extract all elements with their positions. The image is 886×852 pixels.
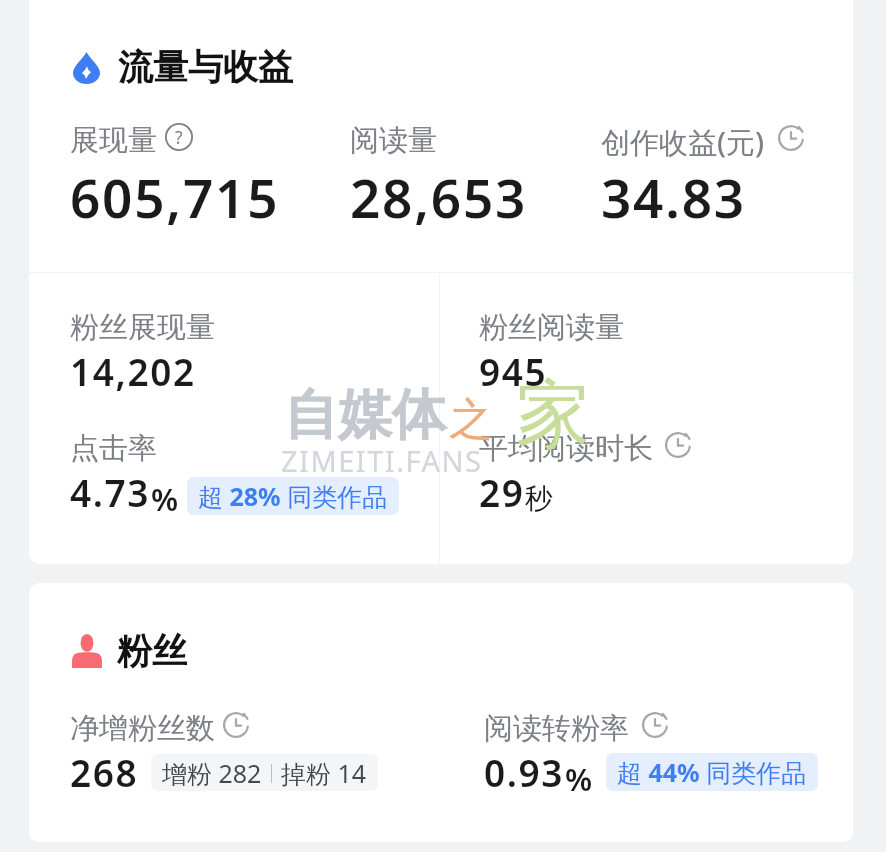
staticText: 945 bbox=[479, 346, 548, 396]
staticText: 粉丝展现量 bbox=[70, 309, 215, 346]
staticText: % bbox=[151, 478, 179, 520]
staticText: 29 bbox=[479, 467, 525, 517]
staticText: 掉粉 14 bbox=[281, 756, 367, 790]
staticText: 增粉 282 bbox=[162, 756, 262, 790]
staticText: 粉丝 bbox=[117, 629, 187, 673]
staticText: 268 bbox=[70, 747, 139, 797]
staticText: 34.83 bbox=[601, 161, 746, 233]
staticText: ZIMEITI.FANS bbox=[281, 441, 483, 480]
staticText: 0.93 bbox=[484, 747, 565, 797]
button[interactable]: 超 44% 同类作品 bbox=[606, 753, 818, 791]
staticText: 28,653 bbox=[350, 161, 528, 233]
staticText: 粉丝阅读量 bbox=[479, 309, 624, 346]
staticText: 超 28% 同类作品 bbox=[198, 479, 388, 513]
staticText: 超 44% 同类作品 bbox=[617, 755, 807, 789]
staticText: ? bbox=[175, 125, 183, 149]
staticText: 14,202 bbox=[70, 346, 196, 396]
other: 更新说明 bbox=[778, 125, 804, 151]
staticText: % bbox=[565, 758, 593, 800]
staticText: 平均阅读时长 bbox=[479, 430, 653, 467]
staticText: 流量与收益 bbox=[118, 45, 293, 89]
staticText: 阅读转粉率 bbox=[484, 710, 629, 747]
other: 更新说明 bbox=[642, 712, 668, 738]
staticText: 创作收益(元) bbox=[601, 122, 765, 162]
staticText: 展现量 bbox=[70, 122, 157, 159]
staticText: 之 bbox=[449, 392, 493, 447]
other: 更新说明 bbox=[665, 432, 691, 458]
staticText: 净增粉丝数 bbox=[70, 710, 215, 747]
staticText: 点击率 bbox=[70, 430, 157, 467]
staticText: 阅读量 bbox=[350, 122, 437, 159]
other: 更新说明 bbox=[223, 712, 249, 738]
staticText: 家 bbox=[516, 369, 590, 462]
staticText: 4.73 bbox=[70, 467, 151, 517]
staticText: 秒 bbox=[525, 481, 553, 516]
staticText: 605,715 bbox=[70, 161, 280, 233]
staticText: 自媒体 bbox=[284, 381, 446, 449]
button[interactable]: 超 28% 同类作品 bbox=[187, 477, 399, 515]
button[interactable]: 增粉 282 bbox=[151, 754, 378, 791]
